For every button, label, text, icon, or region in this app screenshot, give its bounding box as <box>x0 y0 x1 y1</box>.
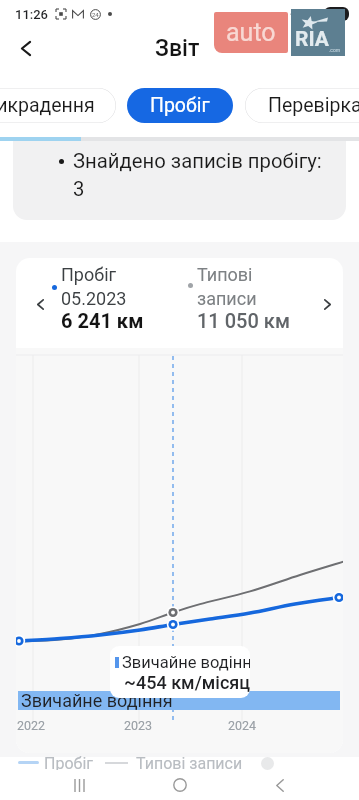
staticText: Перевірка VIN <box>268 94 359 117</box>
staticText: Типові записи <box>197 264 257 309</box>
staticText: Викрадення <box>0 94 95 117</box>
staticText: 2022 <box>17 718 46 733</box>
staticText: Типові записи <box>136 754 243 773</box>
button[interactable]: Previous period <box>22 286 58 322</box>
button[interactable]: Викрадення <box>0 88 116 123</box>
staticText: auto <box>226 18 276 47</box>
staticText: 11:26 <box>15 7 49 22</box>
staticText: 2024 <box>228 718 257 733</box>
staticText: 11 050 км <box>197 309 290 332</box>
staticText: Звіт <box>155 35 200 62</box>
staticText: 6 241 км <box>61 309 144 332</box>
button[interactable]: Перевірка VIN <box>245 88 359 123</box>
staticText: Пробіг <box>44 754 93 773</box>
button[interactable]: Back <box>6 28 46 68</box>
staticText: 24 <box>92 11 99 18</box>
staticText: 2023 <box>124 718 153 733</box>
button[interactable]: Recent apps <box>60 770 100 800</box>
button[interactable]: Home <box>160 770 200 800</box>
staticText: RIA <box>295 27 329 52</box>
staticText: Знайдено записів пробігу: 3 <box>73 149 322 201</box>
button[interactable]: Пробіг <box>127 88 233 123</box>
button[interactable]: Back <box>260 770 300 800</box>
staticText: .com <box>329 47 341 53</box>
staticText: Пробіг 05.2023 <box>61 264 127 309</box>
staticText: ~454 км/місяць <box>124 672 250 693</box>
staticText: Звичайне водіння <box>21 690 173 711</box>
staticText: Пробіг <box>150 94 210 117</box>
staticText: Звичайне водіння <box>122 653 250 672</box>
button[interactable]: Next period <box>309 286 343 322</box>
